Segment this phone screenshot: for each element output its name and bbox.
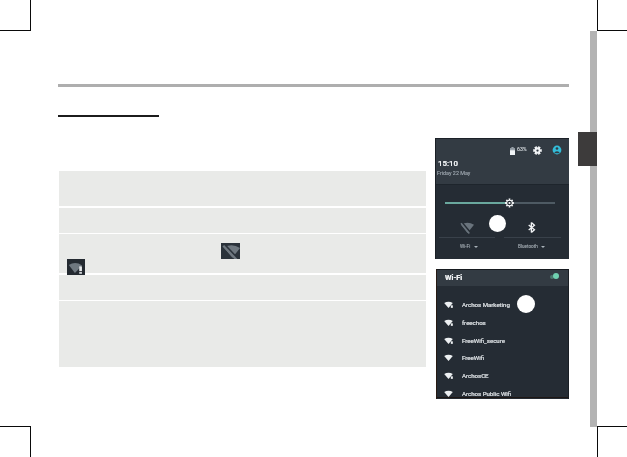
button[interactable]: Archos Public Wifi: [436, 384, 569, 402]
button[interactable]: FreeWifi_secure: [436, 331, 569, 349]
staticText: FreeWifi_secure: [462, 337, 505, 344]
button[interactable]: Bluetooth: [528, 222, 535, 233]
button[interactable]: Archos Marketing: [436, 295, 569, 313]
staticText: FreeWifi: [462, 354, 485, 361]
button[interactable]: Settings: [533, 146, 542, 155]
staticText: 63%: [517, 146, 527, 152]
button[interactable]: User account: [552, 145, 562, 155]
button[interactable]: freechos: [436, 313, 569, 331]
button[interactable]: Wi-Fi toggle: [549, 273, 560, 280]
button[interactable]: Wi-Fi off: [461, 222, 474, 233]
button[interactable]: Wi-Fi: [460, 244, 478, 250]
button[interactable]: Bluetooth: [518, 244, 545, 249]
staticText: ArchosCE: [462, 372, 489, 379]
staticText: Wi-Fi: [460, 244, 471, 250]
button[interactable]: FreeWifi: [436, 348, 569, 366]
button[interactable]: ArchosCE: [436, 366, 569, 384]
staticText: Archos Marketing: [462, 301, 510, 308]
staticText: Bluetooth: [518, 244, 538, 249]
staticText: freechos: [462, 319, 486, 326]
staticText: Archos Public Wifi: [462, 390, 512, 397]
staticText: Wi-Fi: [445, 273, 463, 282]
staticText: Friday 22 May: [437, 170, 471, 176]
staticText: 15:10: [438, 159, 459, 168]
